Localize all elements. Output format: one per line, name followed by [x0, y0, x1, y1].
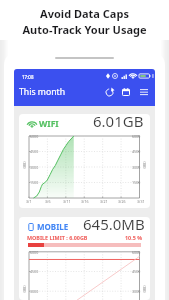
staticText: 3000: [132, 165, 141, 170]
button[interactable]: WIFI: [19, 114, 150, 208]
staticText: 4500: [30, 149, 39, 154]
staticText: 3/1: [26, 199, 32, 204]
staticText: 3/6: [45, 199, 51, 204]
staticText: 17:08: [22, 74, 34, 80]
staticText: 645.0MB: [83, 217, 145, 234]
button[interactable]: MOBILE: [19, 217, 150, 300]
staticText: Avoid Data Caps: [40, 6, 129, 21]
staticText: 3000: [30, 289, 39, 294]
staticText: 6000: [132, 250, 141, 255]
staticText: 10.5 %: [125, 234, 143, 241]
staticText: 6000: [132, 134, 141, 139]
staticText: 3000: [132, 289, 141, 294]
staticText: 3/21: [100, 199, 108, 204]
staticText: (MB): [22, 285, 26, 292]
staticText: 4500: [132, 269, 141, 274]
staticText: (MB): [142, 285, 146, 292]
staticText: WIFI: [39, 118, 59, 130]
staticText: This month: [19, 86, 66, 98]
staticText: 3/31: [137, 199, 145, 204]
button[interactable]: Refresh: [102, 85, 116, 99]
staticText: 3/26: [118, 199, 126, 204]
staticText: 4500: [30, 269, 39, 274]
staticText: 1500: [30, 180, 39, 185]
staticText: Auto-Track Your Usage: [22, 22, 147, 37]
staticText: 3/16: [81, 199, 89, 204]
staticText: 6000: [30, 134, 39, 139]
staticText: 6000: [30, 250, 39, 255]
button[interactable]: Calendar: [119, 85, 133, 99]
staticText: 3000: [30, 165, 39, 170]
staticText: MOBILE: [37, 221, 69, 232]
staticText: MOBILE LIMIT : 6.00GB: [27, 234, 88, 241]
staticText: (MB): [22, 161, 26, 168]
button[interactable]: Menu: [137, 85, 151, 99]
staticText: 6.01GB: [93, 114, 144, 131]
staticText: 3/11: [63, 199, 71, 204]
staticText: 1500: [132, 180, 141, 185]
staticText: (MB): [142, 161, 146, 168]
staticText: 4500: [132, 149, 141, 154]
